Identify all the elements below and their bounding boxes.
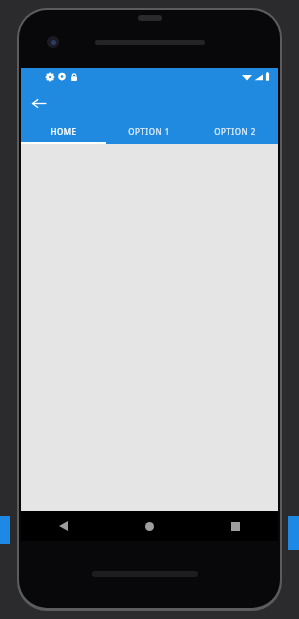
button[interactable]: Recent apps: [192, 511, 278, 541]
button[interactable]: OPTION 2: [192, 120, 278, 144]
button[interactable]: Back: [21, 511, 106, 541]
staticText: OPTION 1: [128, 126, 170, 137]
button[interactable]: OPTION 1: [106, 120, 192, 144]
staticText: OPTION 2: [214, 126, 256, 137]
button[interactable]: HOME: [21, 120, 106, 144]
button[interactable]: Navigate up: [24, 88, 54, 118]
button[interactable]: Home: [106, 511, 192, 541]
staticText: HOME: [50, 126, 77, 137]
